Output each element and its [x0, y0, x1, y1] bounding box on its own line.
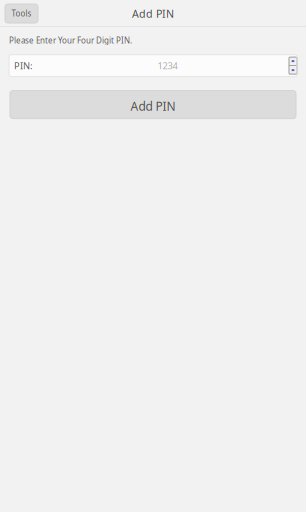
button[interactable]: Add PIN: [10, 91, 296, 119]
staticText: 1234: [157, 59, 177, 72]
staticText: Add PIN: [132, 6, 174, 21]
staticText: Tools: [11, 8, 31, 19]
button[interactable]: Decrease PIN: [289, 66, 297, 74]
staticText: Add PIN: [130, 98, 175, 114]
staticText: PIN:: [14, 59, 33, 72]
button[interactable]: Tools: [5, 4, 38, 23]
staticText: Please Enter Your Four Digit PIN.: [9, 35, 132, 46]
button[interactable]: Increase PIN: [289, 57, 297, 65]
